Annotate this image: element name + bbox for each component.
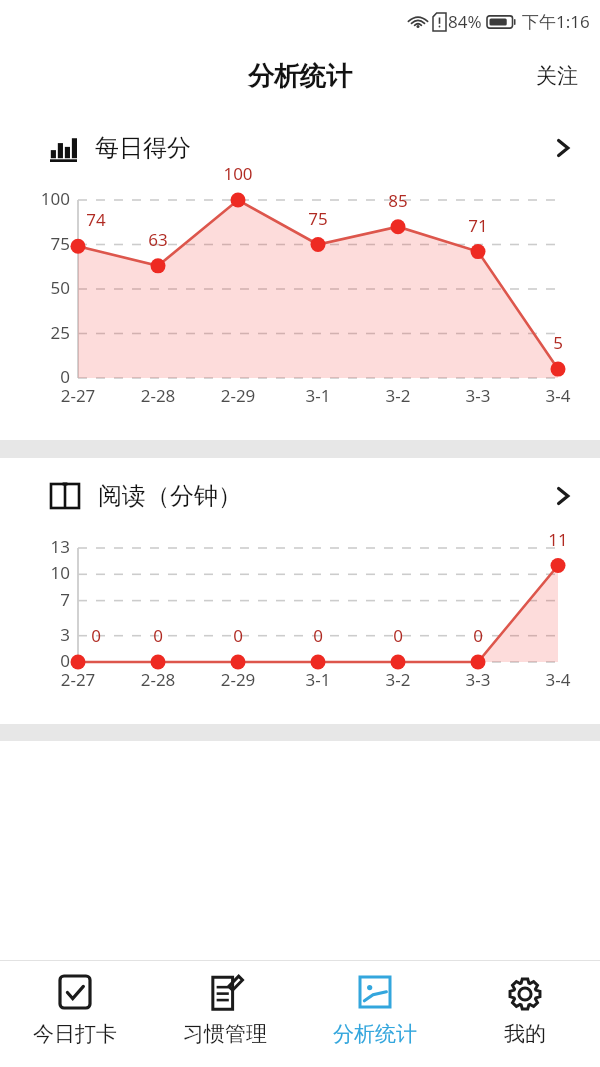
staticText: 分析统计 — [248, 60, 352, 93]
button[interactable]: 今日打卡 — [0, 961, 150, 1067]
staticText: 0 — [123, 624, 193, 647]
staticText: 75 — [8, 232, 70, 255]
staticText: 0 — [61, 624, 131, 647]
staticText: 分析统计 — [333, 1021, 417, 1047]
staticText: 3-4 — [523, 668, 593, 691]
staticText: 0 — [363, 624, 433, 647]
staticText: 10 — [8, 561, 70, 584]
staticText: 3-1 — [283, 384, 353, 407]
staticText: 100 — [8, 187, 70, 210]
staticText: 今日打卡 — [33, 1021, 117, 1047]
staticText: 每日得分 — [95, 133, 191, 163]
button[interactable]: 阅读（分钟） — [0, 458, 600, 534]
staticText: 2-28 — [123, 668, 193, 691]
staticText: 3-2 — [363, 668, 433, 691]
staticText: 85 — [363, 189, 433, 212]
staticText: 下午1:16 — [522, 10, 590, 33]
staticText: 3-4 — [523, 384, 593, 407]
staticText: 75 — [283, 207, 353, 230]
staticText: 7 — [8, 588, 70, 611]
staticText: 3-3 — [443, 668, 513, 691]
staticText: 2-27 — [43, 384, 113, 407]
staticText: 我的 — [504, 1021, 546, 1047]
staticText: 0 — [8, 649, 70, 672]
staticText: 0 — [8, 365, 70, 388]
button[interactable]: 每日得分 — [0, 110, 600, 186]
staticText: 2-29 — [203, 384, 273, 407]
staticText: 2-28 — [123, 384, 193, 407]
staticText: 84% — [448, 10, 482, 33]
staticText: 63 — [123, 228, 193, 251]
button[interactable]: 我的 — [450, 961, 600, 1067]
staticText: 2-27 — [43, 668, 113, 691]
staticText: 习惯管理 — [183, 1021, 267, 1047]
staticText: 3-3 — [443, 384, 513, 407]
staticText: 3 — [8, 623, 70, 646]
button[interactable]: 习惯管理 — [150, 961, 300, 1067]
staticText: 11 — [523, 528, 593, 551]
staticText: 100 — [203, 162, 273, 185]
staticText: 阅读（分钟） — [98, 481, 242, 511]
staticText: 关注 — [536, 63, 578, 89]
staticText: 5 — [523, 331, 593, 354]
staticText: 0 — [443, 624, 513, 647]
staticText: 13 — [8, 535, 70, 558]
button[interactable]: 分析统计 — [300, 961, 450, 1067]
staticText: 50 — [8, 276, 70, 299]
staticText: 74 — [61, 208, 131, 231]
staticText: 3-2 — [363, 384, 433, 407]
staticText: 71 — [443, 214, 513, 237]
staticText: 0 — [203, 624, 273, 647]
staticText: 0 — [283, 624, 353, 647]
button[interactable]: 关注 — [514, 53, 600, 99]
staticText: 2-29 — [203, 668, 273, 691]
staticText: 3-1 — [283, 668, 353, 691]
staticText: 25 — [8, 321, 70, 344]
